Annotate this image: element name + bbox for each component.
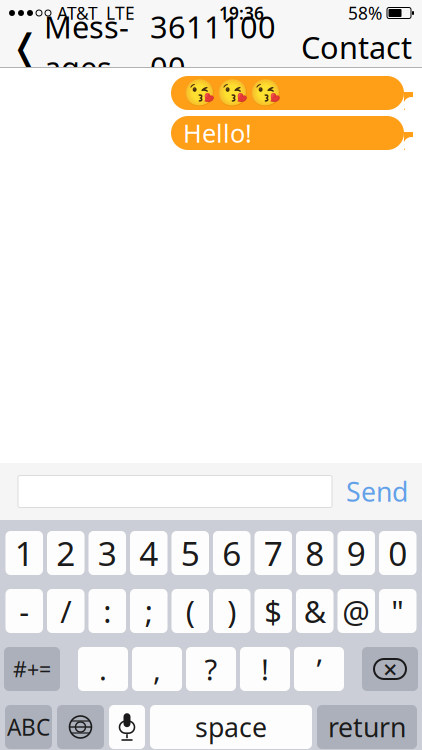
- staticText: :: [103, 591, 111, 631]
- button[interactable]: Send: [332, 470, 422, 512]
- staticText: Send: [346, 474, 408, 509]
- button[interactable]: 2: [47, 531, 84, 575]
- staticText: 58%: [348, 1, 382, 24]
- button[interactable]: !: [240, 647, 290, 691]
- staticText: ": [391, 591, 404, 631]
- staticText: .: [99, 649, 107, 688]
- button[interactable]: Contact: [291, 27, 422, 67]
- staticText: ;: [145, 591, 153, 631]
- staticText: ❬: [10, 27, 40, 67]
- button[interactable]: space: [150, 705, 312, 749]
- staticText: Hello!: [183, 116, 252, 150]
- staticText: Contact: [301, 27, 412, 67]
- button[interactable]: 1: [5, 531, 43, 575]
- button[interactable]: ;: [130, 589, 167, 633]
- button[interactable]: 9: [337, 531, 375, 575]
- button[interactable]: Delete: [362, 647, 418, 691]
- staticText: ’: [316, 649, 321, 688]
- staticText: /: [60, 591, 71, 631]
- button[interactable]: 7: [254, 531, 292, 575]
- staticText: Messages: [44, 6, 129, 88]
- staticText: 3: [98, 531, 117, 575]
- staticText: return: [328, 709, 406, 745]
- staticText: AT&T: [57, 1, 98, 24]
- button[interactable]: 5: [171, 531, 209, 575]
- staticText: 361110000: [150, 6, 276, 88]
- staticText: ): [227, 591, 236, 631]
- button[interactable]: ABC: [5, 705, 52, 749]
- button[interactable]: ’: [294, 647, 344, 691]
- staticText: ×: [383, 652, 397, 686]
- button[interactable]: ": [379, 589, 416, 633]
- staticText: 1: [15, 531, 34, 575]
- staticText: 6: [222, 531, 241, 575]
- button[interactable]: :: [88, 589, 126, 633]
- staticText: #+=: [13, 655, 51, 683]
- staticText: 4: [139, 531, 158, 575]
- button[interactable]: Dictation: [109, 705, 145, 749]
- staticText: (: [186, 591, 195, 631]
- staticText: 0: [388, 531, 407, 575]
- button[interactable]: #+=: [4, 647, 60, 691]
- button[interactable]: 8: [296, 531, 333, 575]
- button[interactable]: ): [213, 589, 250, 633]
- staticText: 2: [56, 531, 75, 575]
- button[interactable]: .: [78, 647, 128, 691]
- button[interactable]: @: [337, 589, 375, 633]
- staticText: ABC: [7, 712, 50, 742]
- button[interactable]: ,: [132, 647, 182, 691]
- staticText: LTE: [106, 1, 135, 24]
- button[interactable]: 4: [130, 531, 167, 575]
- staticText: 5: [181, 531, 200, 575]
- staticText: space: [195, 709, 267, 745]
- button[interactable]: return: [317, 705, 417, 749]
- button[interactable]: (: [171, 589, 209, 633]
- staticText: ?: [204, 649, 217, 688]
- button[interactable]: /: [47, 589, 84, 633]
- staticText: -: [19, 591, 29, 631]
- staticText: 😘😘😘: [183, 78, 282, 108]
- staticText: 7: [264, 531, 283, 575]
- button[interactable]: Next keyboard: [57, 705, 104, 749]
- button[interactable]: 3: [88, 531, 126, 575]
- button[interactable]: ?: [186, 647, 236, 691]
- staticText: ,: [153, 649, 161, 688]
- button[interactable]: $: [254, 589, 292, 633]
- staticText: 8: [305, 531, 324, 575]
- staticText: @: [342, 591, 370, 631]
- button[interactable]: &: [296, 589, 333, 633]
- staticText: 19:36: [219, 1, 264, 24]
- staticText: $: [264, 591, 282, 631]
- button[interactable]: 6: [213, 531, 250, 575]
- staticText: 9: [347, 531, 366, 575]
- staticText: &: [304, 591, 326, 631]
- button[interactable]: -: [5, 589, 43, 633]
- staticText: !: [261, 649, 269, 688]
- button[interactable]: 0: [379, 531, 416, 575]
- button[interactable]: ❬: [0, 27, 135, 67]
